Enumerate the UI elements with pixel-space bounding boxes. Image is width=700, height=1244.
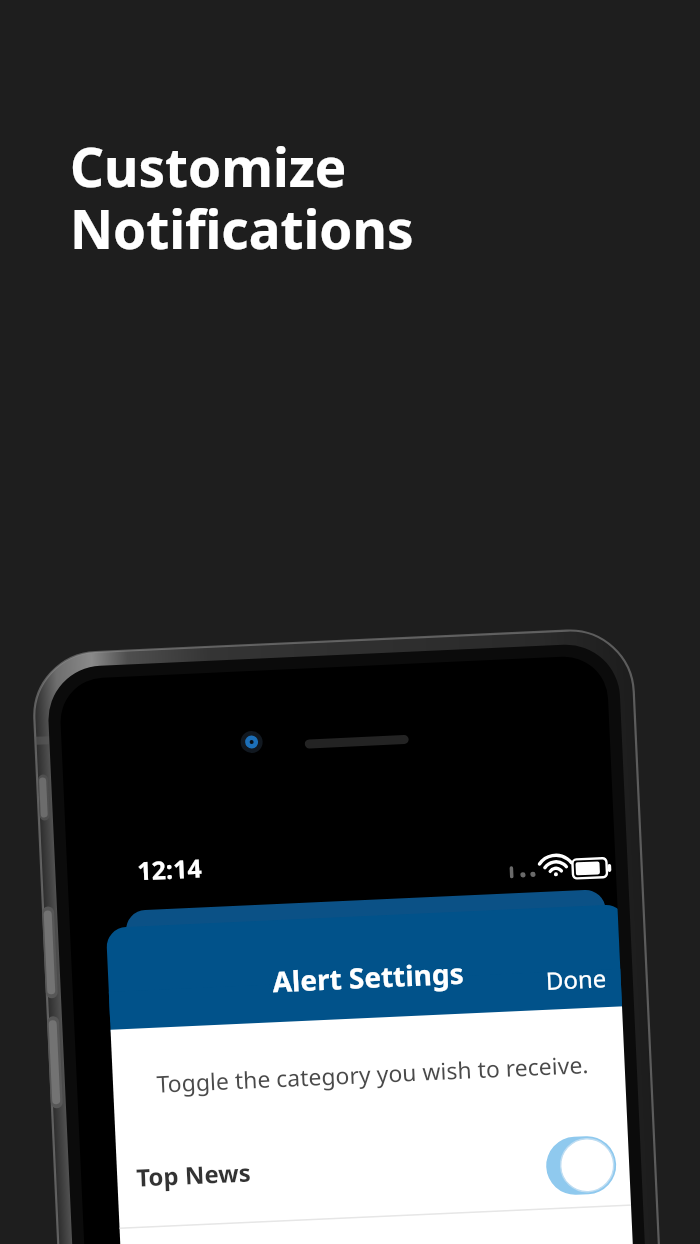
button[interactable]: Customize Notifications promo bbox=[0, 0, 700, 1244]
